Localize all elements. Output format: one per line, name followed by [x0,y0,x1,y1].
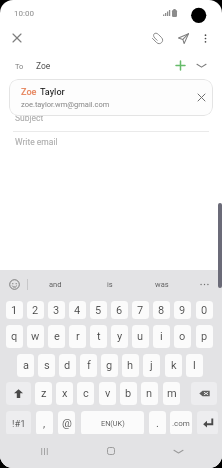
staticText: w [31,330,40,343]
staticText: Taylor [40,87,65,98]
button[interactable]: Recent apps [36,443,52,459]
button[interactable]: Backspace [191,382,217,405]
button[interactable]: d [59,354,76,377]
button[interactable]: Add recipient [171,56,190,75]
staticText: i [160,330,163,343]
button[interactable]: More options [195,28,215,48]
staticText: 4 [74,304,81,317]
button[interactable]: .com [170,411,192,435]
staticText: 9 [179,304,186,317]
staticText: 7 [137,304,144,317]
staticText: 5 [95,304,102,317]
button[interactable]: i [153,325,170,348]
button[interactable]: and [30,272,80,297]
button[interactable]: 1 [6,301,23,319]
staticText: r [76,330,80,343]
button[interactable]: y [111,325,128,348]
staticText: x [62,387,68,400]
staticText: 6 [116,304,123,317]
staticText: Write email [15,137,58,147]
button[interactable]: Home [103,443,119,459]
staticText: k [171,359,177,372]
button[interactable]: m [163,382,180,405]
button[interactable]: f [80,354,97,377]
staticText: 0 [201,304,208,317]
button[interactable]: z [35,382,52,405]
button[interactable]: 0 [196,301,213,319]
staticText: !#1 [12,418,26,429]
button[interactable]: Emoji [4,274,25,295]
button[interactable]: h [122,354,139,377]
staticText: 1 [11,304,18,317]
button[interactable]: Back [170,443,186,459]
staticText: c [83,387,89,400]
button[interactable]: 3 [48,301,65,319]
button[interactable]: k [165,354,182,377]
button[interactable]: 8 [153,301,170,319]
staticText: e [54,330,60,343]
button[interactable]: o [174,325,191,348]
staticText: 8 [158,304,165,317]
button[interactable]: . [149,411,166,435]
button[interactable]: !#1 [6,411,31,435]
staticText: .com [172,419,190,428]
button[interactable]: EN(UK) [81,411,144,435]
staticText: is [107,280,113,289]
button[interactable]: 9 [174,301,191,319]
staticText: Subject [15,113,44,123]
button[interactable]: Enter [197,411,218,435]
button[interactable]: 7 [132,301,149,319]
button[interactable]: g [101,354,118,377]
staticText: q [11,330,18,343]
button[interactable]: u [132,325,149,348]
button[interactable]: n [141,382,158,405]
button[interactable]: , [36,411,53,435]
button[interactable]: Send [173,28,193,48]
staticText: b [125,387,132,400]
button[interactable]: w [27,325,44,348]
button[interactable]: p [196,325,213,348]
staticText: . [156,417,159,430]
button[interactable]: @ [58,411,75,435]
button[interactable]: Remove recipient [192,88,211,107]
staticText: was [155,280,169,289]
button[interactable]: Close [7,28,27,48]
staticText: EN(UK) [101,419,125,428]
button[interactable]: v [99,382,116,405]
button[interactable]: Attach file [147,28,167,48]
staticText: h [127,359,134,372]
button[interactable]: s [38,354,55,377]
staticText: @ [62,417,72,430]
button[interactable]: Zoe [9,79,213,116]
staticText: d [64,359,71,372]
button[interactable]: 6 [111,301,128,319]
staticText: v [105,387,111,400]
button[interactable]: b [120,382,137,405]
button[interactable]: j [143,354,160,377]
button[interactable]: More suggestions [194,274,215,295]
button[interactable]: Shift [6,382,31,405]
button[interactable]: 4 [69,301,86,319]
staticText: Zoe [36,61,51,71]
button[interactable]: x [56,382,73,405]
button[interactable]: is [85,272,135,297]
button[interactable]: e [48,325,65,348]
button[interactable]: q [6,325,23,348]
staticText: To [15,62,24,71]
button[interactable]: 5 [90,301,107,319]
button[interactable]: t [90,325,107,348]
staticText: 2 [32,304,39,317]
staticText: u [137,330,144,343]
button[interactable]: Expand recipients [192,56,211,75]
button[interactable]: l [186,354,203,377]
button[interactable]: 2 [27,301,44,319]
staticText: s [44,359,50,372]
staticText: m [167,387,177,400]
staticText: a [23,359,29,372]
button[interactable]: a [17,354,34,377]
button[interactable]: was [137,272,187,297]
button[interactable]: c [77,382,94,405]
staticText: t [97,330,101,343]
button[interactable]: r [69,325,86,348]
staticText: Zoe [21,87,37,98]
